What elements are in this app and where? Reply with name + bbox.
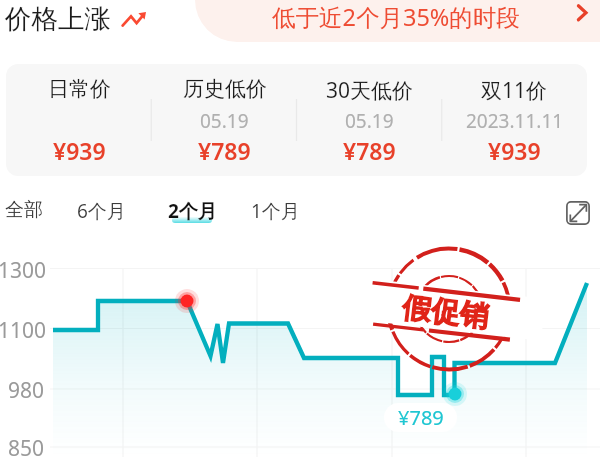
staticText: ¥939 bbox=[53, 135, 106, 166]
staticText: ¥789 bbox=[398, 404, 444, 431]
staticText: 1个月 bbox=[251, 198, 300, 224]
staticText: 980 bbox=[8, 376, 45, 405]
staticText: ¥789 bbox=[198, 135, 251, 166]
button[interactable]: More details bbox=[570, 0, 594, 32]
staticText: 1100 bbox=[0, 316, 47, 345]
staticText: ¥939 bbox=[488, 135, 541, 166]
staticText: 双11价 bbox=[481, 76, 548, 105]
staticText: 6个月 bbox=[77, 198, 126, 224]
button[interactable]: 历史低价 bbox=[152, 64, 297, 176]
staticText: 850 bbox=[8, 434, 45, 457]
staticText: ¥789 bbox=[343, 135, 396, 166]
staticText: 全部 bbox=[5, 198, 43, 222]
staticText: 1300 bbox=[0, 256, 47, 285]
button[interactable]: Expand chart bbox=[566, 201, 590, 225]
staticText: 30天低价 bbox=[326, 76, 414, 105]
staticText: 05.19 bbox=[200, 108, 249, 134]
staticText: 日常价 bbox=[48, 76, 111, 102]
staticText: 低于近2个月35%的时段 bbox=[272, 1, 520, 33]
staticText: 05.19 bbox=[345, 108, 394, 134]
button[interactable]: 全部 bbox=[5, 196, 43, 230]
staticText: 历史低价 bbox=[183, 76, 267, 102]
button[interactable] bbox=[195, 0, 600, 42]
staticText: 假促销 bbox=[400, 289, 491, 336]
button[interactable]: 2个月 bbox=[168, 196, 217, 230]
staticText: 2023.11.11 bbox=[466, 108, 564, 134]
button[interactable]: 6个月 bbox=[77, 196, 126, 230]
button[interactable]: ¥789 bbox=[384, 403, 457, 432]
button[interactable]: 双11价 bbox=[442, 64, 587, 176]
staticText: 2个月 bbox=[168, 198, 217, 224]
button[interactable]: 日常价 bbox=[6, 64, 152, 176]
button[interactable]: 30天低价 bbox=[297, 64, 442, 176]
staticText: 价格上涨 bbox=[5, 2, 111, 35]
button[interactable]: 1个月 bbox=[251, 196, 300, 230]
